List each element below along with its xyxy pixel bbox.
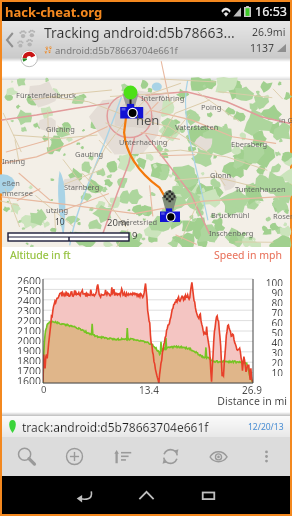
staticText: 1137	[250, 41, 275, 55]
staticText: 50	[271, 326, 283, 336]
button[interactable]: track:android:d5b78663704e661f	[2, 416, 290, 437]
button[interactable]: More options	[242, 437, 290, 476]
staticText: Bruckmühl	[211, 210, 250, 220]
staticText: Geretsried	[120, 217, 158, 227]
staticText: Distance in mi	[2, 394, 287, 408]
staticText: nmersee	[2, 188, 34, 198]
staticText: 2300	[16, 304, 41, 314]
staticText: eßen	[2, 178, 20, 188]
staticText: hack-cheat.org	[5, 3, 103, 21]
staticText: Inning	[2, 156, 25, 166]
staticText: Gauting	[75, 149, 104, 159]
staticText: 40	[271, 336, 283, 346]
staticText: 9	[132, 229, 138, 242]
button[interactable]: Home	[115, 476, 177, 514]
staticText: Tracking android:d5b78663...	[44, 23, 235, 42]
staticText: Vaterstetten	[175, 122, 219, 132]
staticText: 16:53	[255, 3, 287, 20]
staticText: Poing	[201, 102, 222, 112]
staticText: 26.9	[227, 383, 277, 397]
staticText: 100	[265, 276, 283, 286]
staticText: 80	[271, 296, 283, 306]
staticText: 2500	[16, 284, 41, 294]
staticText: 2100	[16, 324, 41, 334]
staticText: 2200	[16, 314, 41, 324]
staticText: Gilching	[46, 124, 75, 134]
staticText: 1900	[16, 344, 41, 354]
staticText: 12/20/13	[248, 421, 284, 433]
staticText: 1600	[16, 374, 41, 384]
staticText: Tuntenhausen	[235, 184, 286, 194]
staticText: Inschenberg	[209, 228, 254, 238]
staticText: track:android:d5b78663704e661f	[22, 419, 209, 435]
staticText: 20	[271, 356, 283, 366]
staticText: 30	[271, 346, 283, 356]
staticText: 20mi	[107, 216, 130, 229]
staticText: Rosen	[273, 211, 292, 221]
staticText: 10	[271, 366, 283, 376]
staticText: Unterhaching	[119, 137, 168, 147]
staticText: in G	[279, 115, 292, 125]
staticText: 13.4	[124, 383, 174, 397]
staticText: 2400	[16, 294, 41, 304]
button[interactable]: Show	[194, 437, 242, 476]
staticText: 90	[271, 286, 283, 296]
staticText: hen	[136, 111, 160, 129]
button[interactable]: Refresh	[146, 437, 194, 476]
staticText: Interföhring	[141, 93, 185, 103]
staticText: utzing	[46, 205, 69, 215]
button[interactable]: Navigate up	[2, 21, 42, 58]
staticText: 0	[41, 383, 47, 396]
staticText: Speed in mph	[214, 248, 282, 262]
staticText: 26.9mi	[252, 25, 286, 39]
staticText: 60	[271, 316, 283, 326]
button[interactable]: Add	[50, 437, 98, 476]
staticText: 10	[55, 216, 65, 228]
staticText: Starnberg	[64, 182, 100, 192]
staticText: Altitude in ft	[10, 248, 71, 262]
staticText: 1800	[16, 354, 41, 364]
button[interactable]: Search	[2, 437, 50, 476]
staticText: Fürstenfeldbruck	[16, 90, 77, 100]
staticText: 70	[271, 306, 283, 316]
staticText: Ebersberg	[231, 139, 268, 149]
staticText: Glonn	[210, 170, 232, 180]
button[interactable]: Back	[53, 476, 115, 514]
staticText: android:d5b78663704e661f	[55, 44, 178, 57]
staticText: 2600	[16, 274, 41, 284]
button[interactable]: Recent apps	[177, 476, 239, 514]
button[interactable]: Statistics	[98, 437, 146, 476]
staticText: 2000	[16, 334, 41, 344]
staticText: 1700	[16, 364, 41, 374]
